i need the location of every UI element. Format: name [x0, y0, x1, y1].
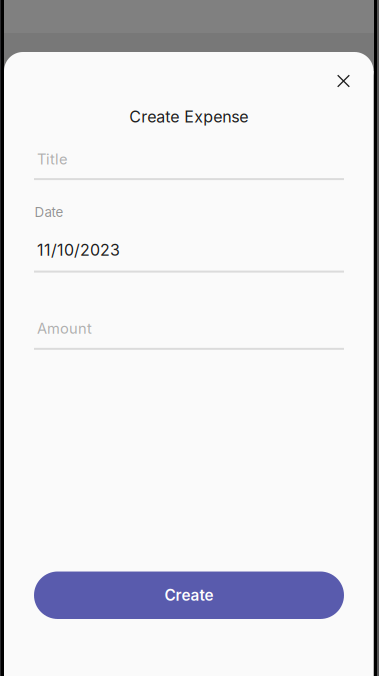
staticText: Create — [164, 586, 213, 605]
staticText: Title — [37, 150, 68, 168]
button[interactable]: Close — [324, 62, 362, 100]
staticText: Amount — [37, 320, 92, 337]
staticText: 11/10/2023 — [37, 240, 120, 260]
button[interactable]: Create — [34, 571, 344, 619]
staticText: Create Expense — [129, 107, 248, 126]
staticText: Date — [34, 204, 63, 220]
